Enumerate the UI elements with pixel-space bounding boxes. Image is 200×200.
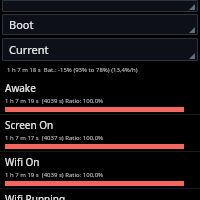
staticText: Screen On [5,118,54,132]
button[interactable]: Awake [0,78,200,114]
other: Dropdown [189,53,195,59]
button[interactable]: Screen On [0,115,200,151]
button[interactable]: Wifi On [0,152,200,188]
staticText: Wifi On [5,155,40,169]
staticText: 1 h 7 m 19 s (4039 s) Ratio: 100,0% [5,171,104,179]
other: Dropdown [189,27,195,33]
button[interactable]: Current [2,38,198,61]
staticText: Boot [9,17,34,32]
other: Dropdown [189,4,195,10]
staticText: Current [9,42,49,57]
staticText: 1 h 7 m 17 s (4037 s) Ratio: 100,0% [5,134,104,142]
staticText: 1 h 7 m 18 s Bat.: -15% (93% to 78%) (13… [7,66,138,74]
button[interactable]: Wifi Running [0,189,200,200]
staticText: 1 h 7 m 19 s (4039 s) Ratio: 100,0% [5,97,104,105]
button[interactable]: Dropdown [2,0,198,12]
staticText: Awake [5,81,36,95]
button[interactable]: Boot [2,14,198,35]
